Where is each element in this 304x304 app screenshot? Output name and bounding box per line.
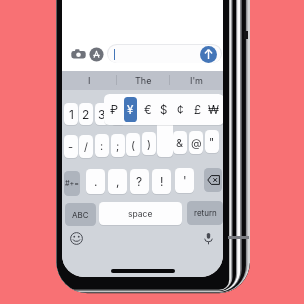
button[interactable]: ABC (65, 203, 96, 226)
staticText: ₽ (110, 103, 119, 117)
staticText: 2 (82, 107, 90, 122)
button[interactable]: 0 (205, 102, 219, 124)
button[interactable]: $ (155, 97, 172, 122)
button[interactable]: @ (189, 131, 203, 154)
staticText: . (94, 174, 98, 189)
button[interactable]: Send (200, 46, 217, 63)
button[interactable]: Camera (71, 47, 86, 62)
staticText: I'm (190, 75, 203, 86)
button[interactable]: #+= (64, 171, 80, 196)
button[interactable]: 4 (111, 103, 125, 125)
staticText: ¥ (127, 103, 134, 117)
staticText: I (88, 75, 91, 86)
staticText: 6 (145, 106, 153, 121)
staticText: 0 (208, 106, 216, 121)
staticText: ; (116, 139, 120, 152)
staticText: @ (191, 136, 202, 149)
button[interactable]: I (62, 71, 116, 90)
staticText: : (100, 139, 104, 152)
button[interactable]: Dictate (202, 232, 215, 245)
button[interactable]: / (79, 135, 93, 158)
button[interactable]: I'm (169, 71, 223, 90)
button[interactable]: : (95, 134, 109, 157)
button[interactable]: £ (189, 97, 206, 122)
button[interactable]: - (64, 135, 78, 158)
staticText: ¢ (177, 103, 184, 117)
staticText: £ (194, 103, 202, 117)
staticText: #+= (65, 179, 80, 188)
staticText: $ (160, 103, 168, 117)
button[interactable]: App Store (89, 47, 104, 62)
staticText: ' (183, 173, 187, 188)
button[interactable]: ₽ (106, 97, 123, 122)
button[interactable]: ₩ (205, 97, 222, 122)
button[interactable]: 9 (189, 102, 203, 124)
button[interactable]: space (99, 202, 182, 225)
staticText: , (116, 174, 120, 189)
staticText: 9 (192, 106, 200, 121)
staticText: ( (131, 138, 136, 151)
staticText: The (135, 75, 152, 86)
staticText: / (84, 140, 88, 153)
button[interactable]: ¢ (172, 97, 189, 122)
staticText: € (144, 103, 152, 117)
staticText: 3 (98, 107, 106, 122)
button[interactable]: ( (126, 133, 140, 156)
staticText: ABC (72, 210, 89, 220)
button[interactable]: . (86, 169, 105, 194)
button[interactable]: 5 (126, 102, 140, 124)
button[interactable]: , (108, 169, 127, 194)
staticText: 5 (129, 106, 137, 121)
staticText: & (176, 136, 184, 149)
staticText: ₩ (208, 103, 219, 117)
staticText: - (68, 140, 74, 153)
staticText: return (194, 208, 217, 218)
button[interactable]: Delete (204, 168, 222, 192)
button[interactable]: ; (111, 134, 125, 157)
button[interactable]: & (173, 131, 187, 154)
button[interactable]: 7 (158, 102, 172, 124)
staticText: ? (136, 174, 143, 189)
staticText: 8 (176, 106, 184, 121)
button[interactable]: return (187, 201, 223, 225)
staticText: ! (160, 174, 164, 189)
staticText: space (128, 209, 153, 219)
staticText: ) (147, 137, 152, 150)
button[interactable]: 6 (142, 102, 156, 124)
button[interactable]: The (116, 71, 170, 90)
staticText: 1 (69, 107, 74, 122)
button[interactable]: 8 (173, 102, 187, 124)
button[interactable]: 2 (79, 103, 93, 125)
button[interactable]: 1 (64, 103, 78, 125)
staticText: " (209, 135, 215, 148)
button[interactable] (107, 44, 222, 63)
button[interactable]: " (205, 130, 219, 153)
button[interactable]: Emoji keyboard (70, 232, 83, 245)
button[interactable]: € (139, 97, 156, 122)
staticText: 4 (114, 107, 122, 122)
button[interactable]: ! (152, 169, 171, 194)
button[interactable]: ? (130, 169, 149, 194)
button[interactable]: ) (142, 132, 156, 155)
staticText: 7 (162, 106, 169, 121)
button[interactable]: ' (175, 168, 194, 193)
button[interactable]: 3 (95, 103, 109, 125)
button[interactable]: ¥ (122, 97, 139, 122)
